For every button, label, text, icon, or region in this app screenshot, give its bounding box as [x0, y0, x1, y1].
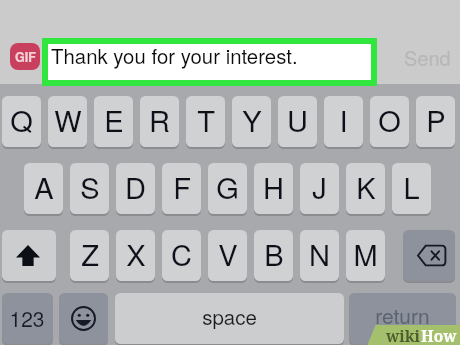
staticText: W: [54, 99, 82, 141]
staticText: X: [126, 233, 146, 275]
staticText: How: [421, 325, 457, 345]
button[interactable]: Backspace: [403, 230, 455, 281]
staticText: S: [80, 166, 100, 208]
button[interactable]: Emoji: [59, 293, 108, 344]
staticText: E: [104, 99, 124, 141]
button[interactable]: N: [300, 230, 339, 281]
staticText: wiki: [386, 325, 421, 345]
button[interactable]: 123: [2, 293, 53, 344]
staticText: I: [339, 99, 348, 141]
button[interactable]: V: [208, 230, 247, 281]
staticText: P: [426, 99, 446, 141]
staticText: J: [312, 166, 327, 208]
staticText: G: [216, 166, 239, 208]
button[interactable]: Send: [398, 43, 456, 69]
staticText: D: [125, 166, 146, 208]
button[interactable]: W: [48, 96, 87, 147]
staticText: T: [197, 99, 215, 141]
button[interactable]: E: [94, 96, 133, 147]
button[interactable]: D: [116, 163, 155, 214]
button[interactable]: Shift: [2, 230, 56, 281]
staticText: space: [202, 301, 257, 330]
button[interactable]: Z: [70, 230, 109, 281]
staticText: A: [34, 166, 54, 208]
staticText: C: [171, 233, 192, 275]
button[interactable]: F: [162, 163, 201, 214]
staticText: U: [287, 99, 308, 141]
button[interactable]: C: [162, 230, 201, 281]
staticText: 123: [9, 303, 45, 333]
staticText: return: [375, 300, 430, 330]
button[interactable]: T: [186, 96, 225, 147]
staticText: L: [403, 166, 420, 208]
staticText: O: [378, 99, 401, 141]
button[interactable]: GIF: [10, 43, 40, 70]
staticText: N: [309, 233, 330, 275]
staticText: Q: [10, 99, 33, 141]
staticText: R: [149, 99, 170, 141]
staticText: Y: [242, 99, 262, 141]
button[interactable]: G: [208, 163, 247, 214]
button[interactable]: B: [254, 230, 293, 281]
button[interactable]: U: [278, 96, 317, 147]
staticText: Send: [404, 43, 451, 69]
button[interactable]: space: [115, 293, 344, 344]
staticText: B: [264, 233, 284, 275]
staticText: H: [263, 166, 284, 208]
button[interactable]: J: [300, 163, 339, 214]
button[interactable]: A: [24, 163, 63, 214]
staticText: Thank you for your interest.: [51, 41, 298, 70]
button[interactable]: K: [346, 163, 385, 214]
button[interactable]: R: [140, 96, 179, 147]
staticText: K: [356, 166, 376, 208]
button[interactable]: Y: [232, 96, 271, 147]
button[interactable]: O: [370, 96, 409, 147]
staticText: GIF: [15, 48, 36, 66]
button[interactable]: return: [349, 293, 456, 344]
button[interactable]: M: [346, 230, 385, 281]
staticText: V: [218, 233, 238, 275]
button[interactable]: H: [254, 163, 293, 214]
button[interactable]: P: [416, 96, 455, 147]
button[interactable]: Q: [2, 96, 41, 147]
staticText: F: [173, 166, 191, 208]
button[interactable]: X: [116, 230, 155, 281]
staticText: Z: [81, 233, 99, 275]
button[interactable]: L: [392, 163, 431, 214]
button[interactable]: Thank you for your interest.: [48, 44, 371, 80]
staticText: M: [353, 233, 378, 275]
button[interactable]: I: [324, 96, 363, 147]
button[interactable]: S: [70, 163, 109, 214]
